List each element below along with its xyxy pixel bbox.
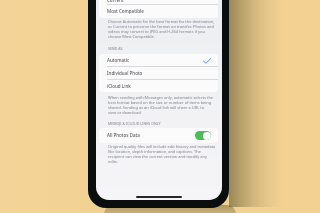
button[interactable]: Most Compatible [99,5,218,18]
button[interactable]: iCloud Link [99,80,218,92]
staticText: iCloud Link [107,83,131,89]
staticText: Automatic [107,57,130,63]
staticText: MEMOJI & ICLOUD LINKS ONLY [108,121,161,126]
button[interactable]: Automatic [99,54,218,67]
staticText: Individual Photo [107,70,143,76]
staticText: Most Compatible [107,8,144,14]
staticText: Original quality files will include edit… [108,144,216,149]
staticText: shared. Sending as an iCloud link will s… [108,105,205,110]
other: Selected [203,58,211,64]
staticText: recipient can view the current version a… [108,154,207,159]
button[interactable]: All Photos Data, on [195,131,211,140]
staticText: view or download. [108,110,142,115]
button[interactable]: Individual Photo [99,67,218,80]
staticText: choose Most Compatible. [108,34,155,39]
staticText: When sending with Messages only, automat… [108,95,214,100]
staticText: edits. [108,159,119,164]
staticText: Current [107,0,124,3]
staticText: like location, depth information, and ca… [108,149,201,154]
staticText: SEND AS [108,46,123,51]
staticText: videos may convert to JPEG and H.264 for… [108,29,205,34]
button[interactable]: All Photos Data [99,128,218,143]
staticText: All Photos Data [107,132,140,138]
staticText: Choose Automatic for the best format for… [108,19,215,24]
staticText: best format based on the size or number … [108,100,212,105]
button[interactable]: Current [99,0,218,5]
staticText: or Current to preserve the format on tra… [108,24,214,29]
